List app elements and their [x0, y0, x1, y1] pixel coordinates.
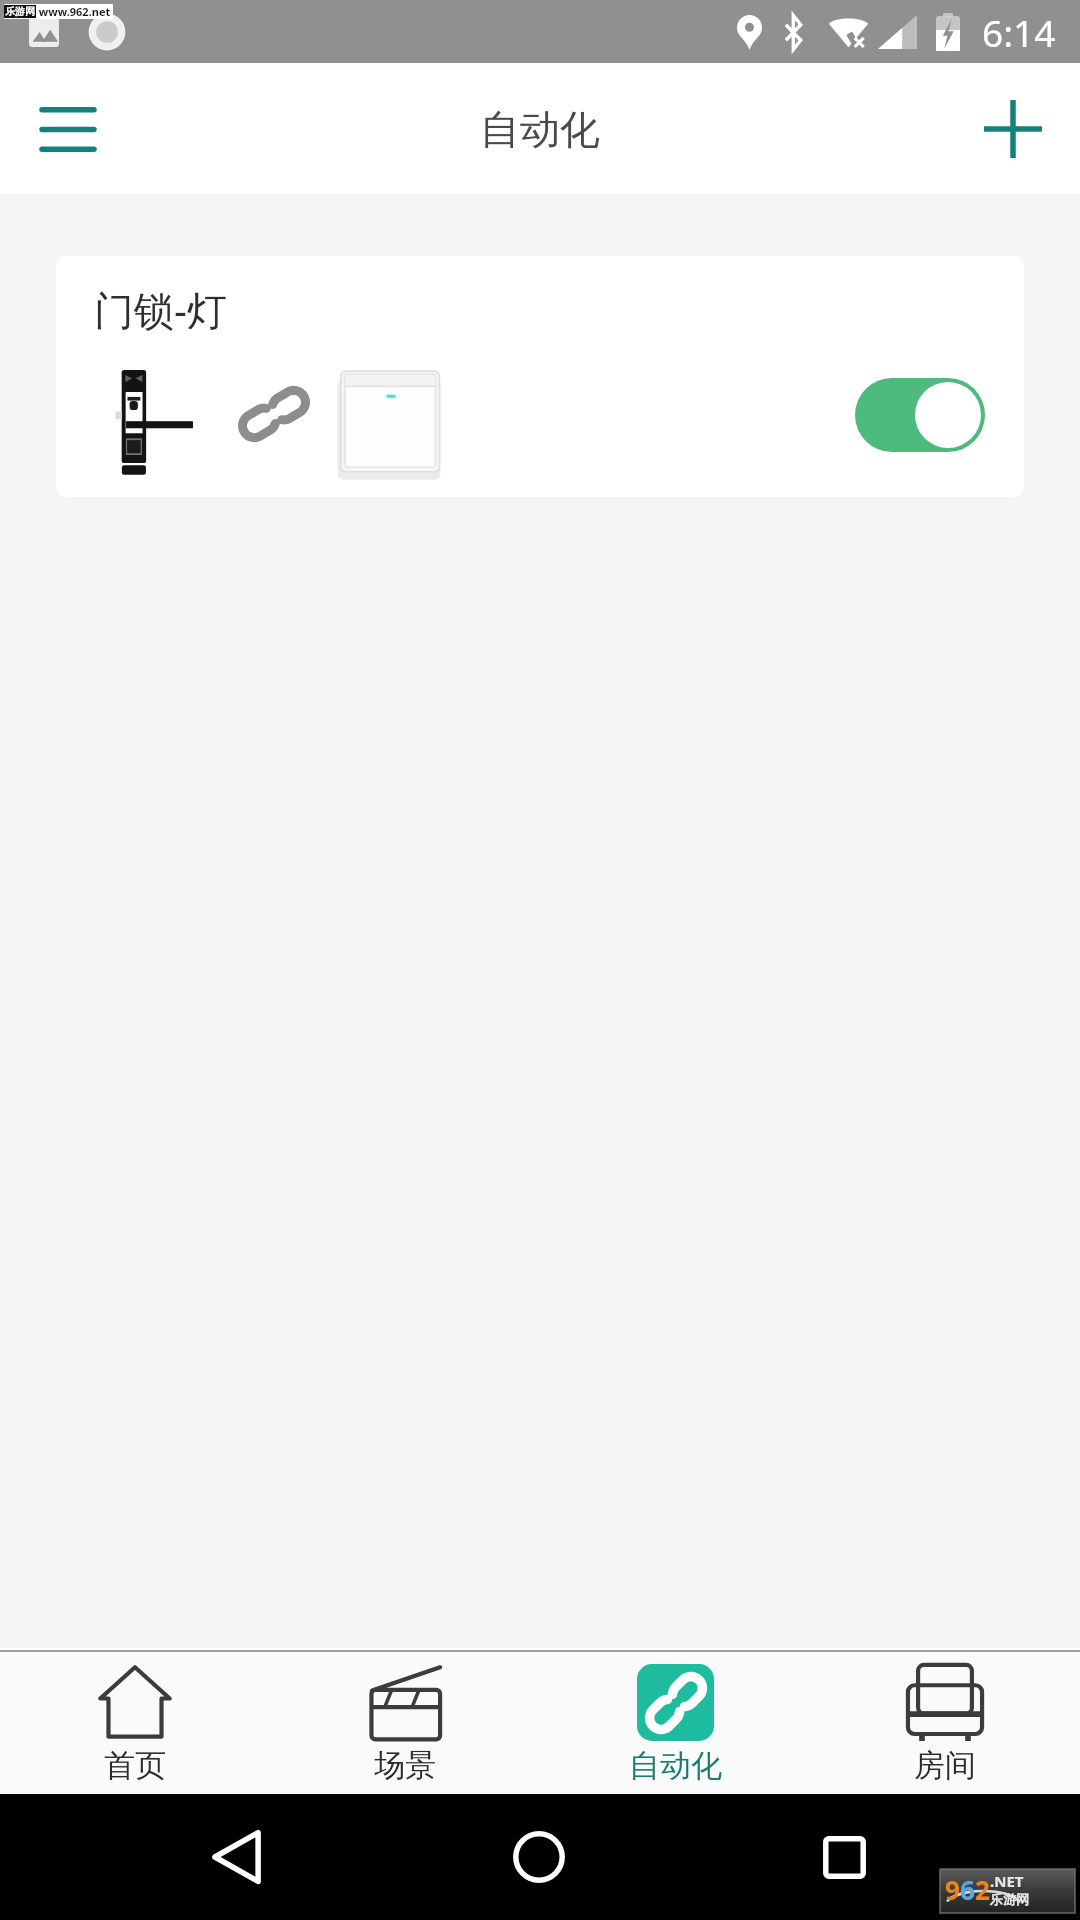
staticText: 门锁-灯: [94, 282, 227, 337]
button[interactable]: Toggle automation: [855, 378, 985, 452]
button[interactable]: Back: [177, 1794, 297, 1920]
staticText: 乐游网: [990, 1891, 1029, 1907]
staticText: 场景: [374, 1746, 436, 1785]
staticText: 9: [945, 1872, 960, 1907]
button[interactable]: Home: [0, 1653, 270, 1794]
button[interactable]: Rooms: [810, 1653, 1080, 1794]
staticText: 房间: [914, 1746, 976, 1785]
staticText: www.962.net: [36, 4, 111, 19]
button[interactable]: Home: [479, 1794, 599, 1920]
button[interactable]: Automation: [540, 1653, 810, 1794]
other: Wall switch: [333, 364, 445, 482]
staticText: 6:14: [982, 7, 1056, 57]
staticText: 乐游网: [5, 5, 35, 18]
staticText: 6: [960, 1872, 975, 1907]
staticText: 自动化: [629, 1746, 722, 1785]
staticText: 首页: [104, 1746, 166, 1785]
button[interactable]: Add: [957, 73, 1069, 185]
button[interactable]: Scenes: [270, 1653, 540, 1794]
staticText: 自动化: [480, 104, 600, 154]
button[interactable]: Menu: [12, 73, 124, 185]
other: Door lock: [112, 363, 200, 485]
button[interactable]: 门锁-灯: [56, 256, 1024, 497]
staticText: 2: [975, 1872, 990, 1907]
staticText: .NET: [990, 1871, 1024, 1891]
button[interactable]: Recents: [784, 1794, 904, 1920]
